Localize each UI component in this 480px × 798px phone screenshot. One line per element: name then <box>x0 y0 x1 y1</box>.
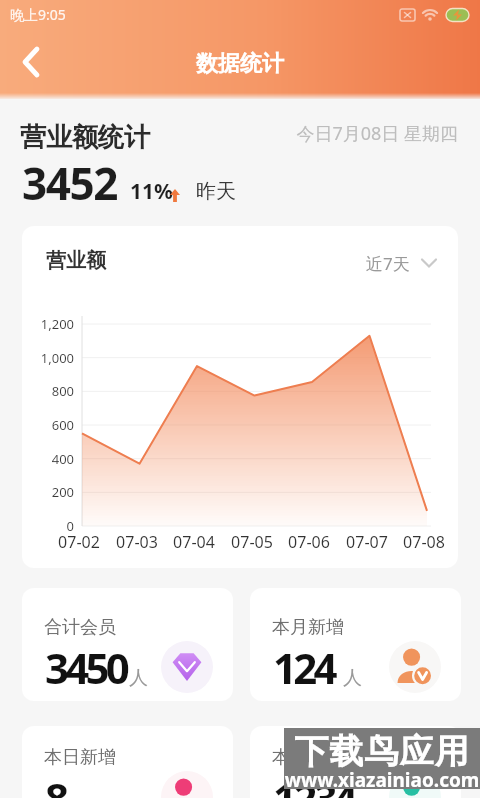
button[interactable]: 本日新增 <box>22 726 233 798</box>
staticText: 124 <box>273 639 334 696</box>
button[interactable]: 近7天 <box>344 251 437 275</box>
staticText: 营业额 <box>46 248 106 273</box>
staticText: 本月新增 <box>272 616 344 639</box>
staticText: 600 <box>30 416 74 434</box>
staticText: 今日7月08日 星期四 <box>0 121 458 146</box>
staticText: 800 <box>30 382 74 400</box>
staticText: 营业额统计 <box>20 121 150 154</box>
staticText: 07-07 <box>342 531 392 553</box>
staticText: www.xiazainiao.com <box>284 767 480 793</box>
staticText: 本年新增 <box>272 746 344 769</box>
staticText: 1234 <box>273 769 354 798</box>
staticText: 3450 <box>45 639 126 696</box>
staticText: 近7天 <box>366 252 410 275</box>
staticText: 人 <box>343 666 362 690</box>
staticText: 晚上9:05 <box>10 5 66 24</box>
button[interactable]: 本月新增 <box>250 588 461 701</box>
staticText: 200 <box>30 483 74 501</box>
button[interactable]: 本年新增 <box>250 726 461 798</box>
staticText: 400 <box>30 450 74 468</box>
staticText: 8 <box>45 769 66 798</box>
staticText: 数据统计 <box>0 50 480 78</box>
staticText: 1,000 <box>30 349 74 367</box>
staticText: 07-04 <box>169 531 219 553</box>
button[interactable]: 合计会员 <box>22 588 233 701</box>
staticText: 1,200 <box>30 315 74 333</box>
staticText: 昨天 <box>196 179 236 204</box>
button[interactable] <box>9 40 53 84</box>
staticText: 人 <box>129 666 148 690</box>
staticText: 本日新增 <box>44 746 116 769</box>
staticText: 3452 <box>22 153 118 213</box>
staticText: 合计会员 <box>44 616 116 639</box>
staticText: 07-05 <box>227 531 277 553</box>
staticText: 07-03 <box>112 531 162 553</box>
staticText: 11% <box>130 177 173 206</box>
staticText: 07-08 <box>399 531 449 553</box>
staticText: 07-02 <box>54 531 104 553</box>
staticText: 07-06 <box>284 531 334 553</box>
staticText: 下载鸟应用 <box>284 730 480 773</box>
staticText: 0 <box>30 517 74 535</box>
